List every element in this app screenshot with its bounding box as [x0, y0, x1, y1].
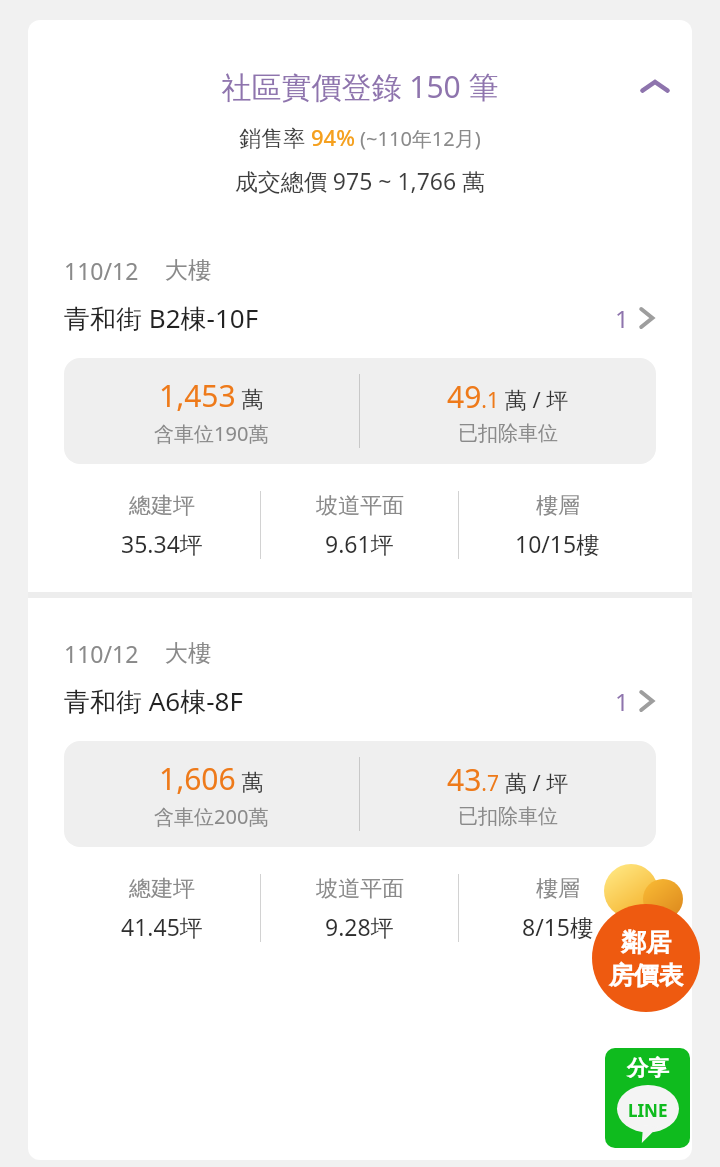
button[interactable]: 鄰居房價表: [585, 855, 707, 1015]
staticText: 銷售率 94% (~110年12月): [28, 122, 692, 152]
staticText: 已扣除車位: [458, 421, 558, 446]
staticText: 1,453 萬: [159, 375, 264, 416]
staticText: 41.45坪: [121, 911, 203, 942]
staticText: 總建坪: [129, 492, 195, 520]
other: 收合: [640, 77, 670, 97]
staticText: 房價表: [591, 960, 701, 991]
staticText: 成交總價 975 ~ 1,766 萬: [28, 165, 692, 196]
staticText: 樓層: [536, 492, 580, 520]
staticText: 青和街 B2棟-10F: [64, 300, 259, 336]
staticText: 總建坪: [129, 875, 195, 903]
staticText: 樓層: [536, 875, 580, 903]
staticText: 大樓: [165, 639, 211, 668]
button[interactable]: 110/12: [28, 598, 692, 975]
staticText: 10/15樓: [515, 528, 600, 559]
staticText: 已扣除車位: [458, 804, 558, 829]
staticText: 分享: [627, 1055, 669, 1081]
staticText: 9.28坪: [325, 911, 394, 942]
staticText: 含車位200萬: [154, 803, 269, 830]
staticText: 8/15樓: [522, 911, 594, 942]
staticText: 1: [615, 685, 629, 718]
staticText: 1: [615, 302, 629, 335]
staticText: 坡道平面: [316, 492, 404, 520]
button[interactable]: 社區實價登錄 150 筆: [28, 20, 692, 214]
staticText: 鄰居: [591, 927, 701, 958]
staticText: 坡道平面: [316, 875, 404, 903]
button[interactable]: 分享到 LINE: [605, 1048, 690, 1148]
staticText: LINE: [628, 1099, 668, 1122]
staticText: 35.34坪: [121, 528, 203, 559]
staticText: 49.1 萬 / 坪: [447, 376, 569, 417]
staticText: 43.7 萬 / 坪: [447, 759, 569, 800]
staticText: 9.61坪: [325, 528, 394, 559]
staticText: 含車位190萬: [154, 420, 269, 447]
staticText: 1,606 萬: [159, 758, 264, 799]
staticText: 青和街 A6棟-8F: [64, 683, 243, 719]
button[interactable]: 110/12: [28, 215, 692, 592]
staticText: 社區實價登錄 150 筆: [28, 66, 692, 107]
staticText: 大樓: [165, 256, 211, 285]
staticText: 110/12: [64, 255, 139, 286]
staticText: 110/12: [64, 638, 139, 669]
